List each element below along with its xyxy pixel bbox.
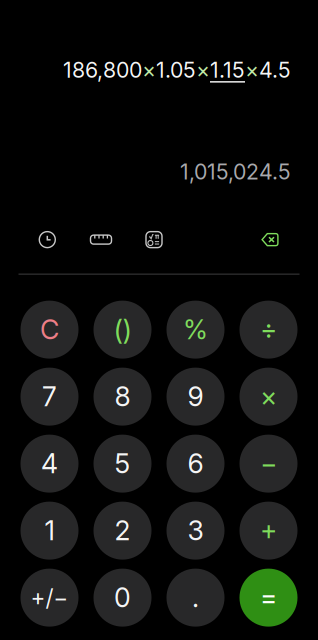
staticText: 3 bbox=[187, 514, 203, 547]
button[interactable]: 5 bbox=[93, 435, 151, 493]
button[interactable]: 4 bbox=[20, 435, 78, 493]
button[interactable]: () bbox=[93, 301, 151, 359]
button[interactable]: . bbox=[166, 569, 224, 627]
staticText: 0 bbox=[114, 581, 131, 614]
staticText: 2 bbox=[114, 514, 130, 547]
button[interactable]: 2 bbox=[93, 502, 151, 560]
staticText: = bbox=[260, 581, 277, 614]
button[interactable]: + bbox=[239, 502, 297, 560]
button[interactable]: × bbox=[239, 368, 297, 426]
button[interactable]: 0 bbox=[93, 569, 151, 627]
staticText: 6 bbox=[187, 447, 203, 480]
button[interactable]: Delete bbox=[253, 227, 287, 253]
staticText: 1.05 bbox=[156, 57, 196, 83]
button[interactable]: % bbox=[166, 301, 224, 359]
staticText: 5 bbox=[114, 447, 130, 480]
button[interactable]: = bbox=[239, 569, 297, 627]
staticText: . bbox=[192, 581, 199, 614]
button[interactable]: 9 bbox=[166, 368, 224, 426]
staticText: × bbox=[260, 380, 277, 413]
button[interactable]: 3 bbox=[166, 502, 224, 560]
button[interactable]: Unit converter bbox=[67, 227, 135, 253]
button[interactable]: C bbox=[20, 301, 78, 359]
staticText: 4 bbox=[41, 447, 58, 480]
staticText: () bbox=[113, 313, 131, 347]
button[interactable]: − bbox=[239, 435, 297, 493]
staticText: 8 bbox=[114, 380, 130, 413]
staticText: % bbox=[183, 313, 208, 346]
staticText: 1 bbox=[44, 514, 54, 547]
button[interactable]: 6 bbox=[166, 435, 224, 493]
staticText: − bbox=[260, 447, 277, 480]
staticText: × bbox=[196, 57, 210, 83]
button[interactable]: History bbox=[28, 227, 67, 253]
button[interactable]: +/− bbox=[20, 569, 78, 627]
staticText: 1.15 bbox=[210, 57, 245, 83]
staticText: 186,800 bbox=[63, 57, 142, 83]
staticText: + bbox=[260, 514, 277, 547]
staticText: × bbox=[245, 57, 259, 83]
staticText: 7 bbox=[42, 380, 57, 413]
staticText: ÷ bbox=[260, 313, 277, 346]
button[interactable]: 8 bbox=[93, 368, 151, 426]
staticText: × bbox=[142, 57, 156, 83]
button[interactable]: 7 bbox=[20, 368, 78, 426]
button[interactable]: Scientific functions bbox=[135, 227, 173, 253]
staticText: 1,015,024.5 bbox=[180, 159, 291, 185]
button[interactable]: ÷ bbox=[239, 301, 297, 359]
staticText: +/− bbox=[30, 584, 68, 611]
button[interactable]: 1 bbox=[20, 502, 78, 560]
staticText: C bbox=[40, 313, 59, 346]
staticText: 9 bbox=[187, 380, 203, 413]
staticText: 4.5 bbox=[259, 57, 291, 83]
